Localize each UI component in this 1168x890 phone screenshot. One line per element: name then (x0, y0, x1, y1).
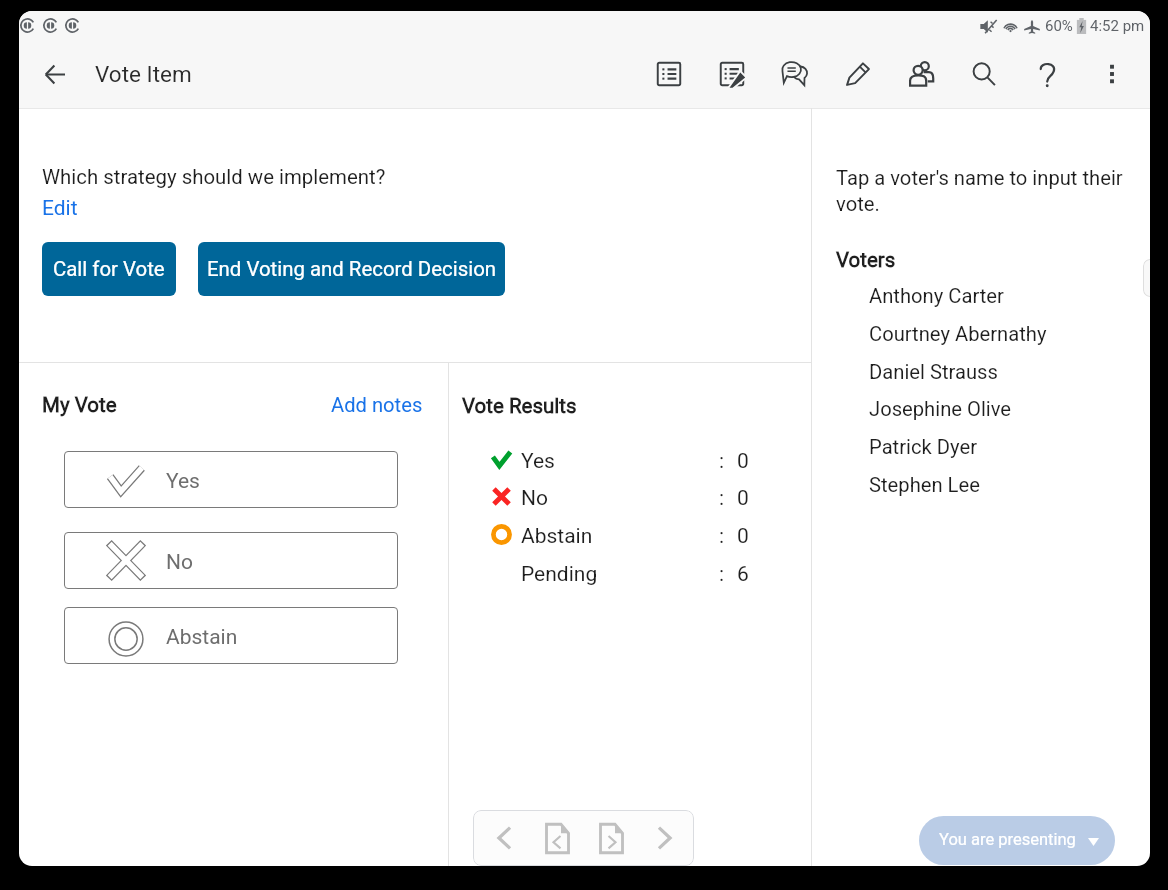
button[interactable]: Search (962, 52, 1006, 96)
staticText: Stephen Lee (869, 473, 980, 497)
staticText: 6 (737, 562, 749, 587)
button[interactable]: Pending (485, 561, 765, 589)
button[interactable]: Stephen Lee (836, 466, 1131, 504)
staticText: 0 (737, 449, 749, 474)
staticText: You are presenting (939, 830, 1076, 849)
staticText: Which strategy should we implement? (42, 165, 386, 189)
staticText: Daniel Strauss (869, 360, 998, 384)
button[interactable]: Patrick Dyer (836, 428, 1131, 466)
button[interactable]: Next (638, 811, 690, 865)
staticText: Vote Results (462, 394, 577, 418)
button[interactable]: Anthony Carter (836, 277, 1131, 315)
staticText: Voters (836, 248, 896, 272)
staticText: No (521, 486, 548, 511)
button[interactable]: Attendees (899, 52, 943, 96)
staticText: Call for Vote (53, 257, 165, 281)
button[interactable]: Yes (64, 451, 398, 508)
button[interactable]: Daniel Strauss (836, 353, 1131, 391)
button[interactable]: Abstain (64, 607, 398, 664)
button[interactable]: Edit (42, 196, 78, 221)
staticText: Abstain (166, 625, 238, 650)
staticText: 60% (1045, 17, 1073, 35)
button[interactable]: Annotate (836, 52, 880, 96)
button[interactable]: Previous page (531, 811, 583, 865)
staticText: No (166, 550, 193, 575)
staticText: : (719, 524, 725, 549)
staticText: Josephine Olive (869, 397, 1012, 421)
button[interactable]: No (485, 485, 765, 513)
button[interactable]: No (64, 532, 398, 589)
staticText: Add notes (331, 393, 423, 417)
button[interactable]: Next page (585, 811, 637, 865)
button[interactable]: Josephine Olive (836, 390, 1131, 428)
staticText: : (719, 486, 725, 511)
staticText: 4:52 pm (1090, 17, 1145, 35)
button[interactable]: End Voting and Record Decision (198, 242, 505, 296)
button[interactable]: Abstain (485, 523, 765, 551)
staticText: Pending (521, 562, 598, 587)
staticText: 0 (737, 486, 749, 511)
staticText: : (719, 562, 725, 587)
staticText: Tap a voter's name to input their vote. (836, 166, 1133, 216)
staticText: Edit (42, 196, 78, 221)
button[interactable]: Call for Vote (42, 242, 176, 296)
button[interactable]: Help (1026, 52, 1070, 96)
staticText: : (719, 449, 725, 474)
staticText: Courtney Abernathy (869, 322, 1047, 346)
button[interactable]: Add notes (331, 393, 423, 417)
button[interactable]: Yes (485, 448, 765, 476)
button[interactable]: You are presenting (919, 816, 1115, 865)
button[interactable]: Courtney Abernathy (836, 315, 1131, 353)
button[interactable]: Chat (773, 52, 817, 96)
staticText: 0 (737, 524, 749, 549)
button[interactable]: Back (31, 50, 79, 98)
staticText: Patrick Dyer (869, 435, 977, 459)
staticText: Yes (166, 469, 200, 494)
staticText: End Voting and Record Decision (207, 257, 497, 281)
staticText: My Vote (42, 393, 117, 417)
button[interactable]: More options (1090, 52, 1134, 96)
staticText: Abstain (521, 524, 593, 549)
button[interactable]: Previous (478, 811, 530, 865)
button[interactable]: Minutes (710, 52, 754, 96)
button[interactable]: Agenda (647, 52, 691, 96)
staticText: Vote Item (95, 61, 192, 87)
staticText: Anthony Carter (869, 284, 1004, 308)
staticText: Yes (521, 449, 555, 474)
